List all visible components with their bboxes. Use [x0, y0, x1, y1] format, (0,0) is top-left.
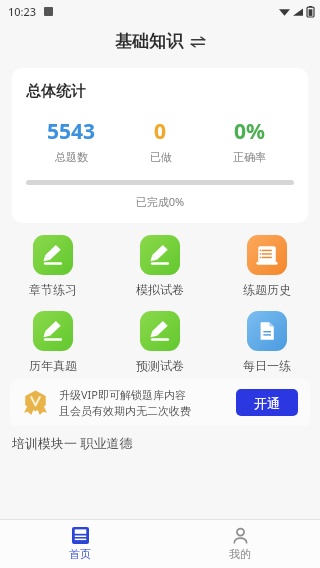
staticText: 我的	[229, 547, 251, 561]
staticText: 培训模块一 职业道德	[12, 434, 133, 452]
staticText: 首页	[69, 547, 91, 561]
staticText: 模拟试卷	[136, 282, 184, 297]
staticText: 总体统计	[26, 82, 86, 101]
staticText: 章节练习	[29, 282, 77, 297]
button[interactable]: Switch subject	[190, 34, 206, 50]
button[interactable]: 我的	[160, 520, 320, 568]
staticText: 10:23	[8, 4, 37, 19]
staticText: 且会员有效期内无二次收费	[59, 404, 191, 418]
button[interactable]: 预测试卷	[106, 311, 213, 373]
staticText: 已做	[150, 150, 172, 164]
staticText: 开通	[254, 395, 280, 411]
button[interactable]: 升级VIP即可解锁题库内容	[10, 379, 310, 426]
staticText: 总题数	[55, 150, 88, 164]
staticText: 正确率	[233, 150, 266, 164]
staticText: 5543	[47, 117, 96, 146]
button[interactable]: 每日一练	[213, 311, 320, 373]
button[interactable]: 首页	[0, 520, 160, 568]
staticText: 0%	[234, 117, 265, 146]
button[interactable]: 章节练习	[0, 235, 106, 297]
staticText: 基础知识	[115, 31, 183, 52]
staticText: 每日一练	[243, 358, 291, 373]
button[interactable]: 历年真题	[0, 311, 106, 373]
button[interactable]: 模拟试卷	[106, 235, 213, 297]
button[interactable]: 开通	[236, 389, 298, 416]
staticText: 0	[154, 117, 167, 146]
staticText: 升级VIP即可解锁题库内容	[59, 387, 186, 402]
button[interactable]: 练题历史	[213, 235, 320, 297]
staticText: 历年真题	[29, 358, 77, 373]
button[interactable]: 总体统计	[12, 68, 308, 223]
staticText: 已完成0%	[26, 194, 294, 209]
staticText: 预测试卷	[136, 358, 184, 373]
staticText: 练题历史	[243, 282, 291, 297]
